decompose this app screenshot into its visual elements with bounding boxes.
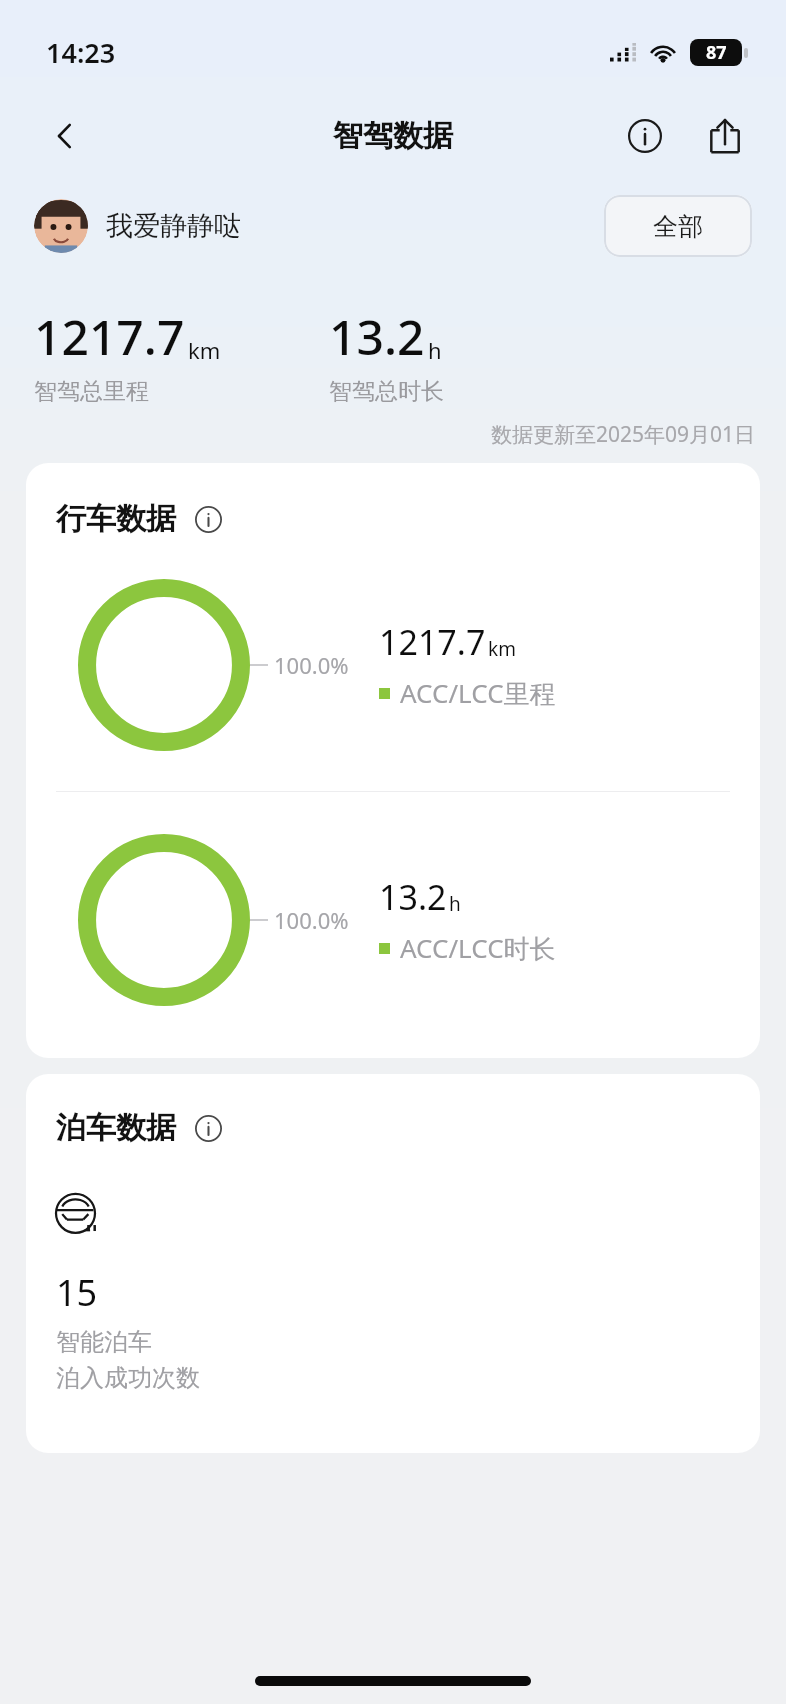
button[interactable]: 我爱静静哒 [34,199,249,253]
button[interactable]: Info [614,105,676,167]
staticText: 13.2 [379,874,447,920]
staticText: km [188,335,221,365]
staticText: 智驾数据 [333,117,453,155]
staticText: 行车数据 [56,500,176,538]
staticText: ACC/LCC里程 [400,675,556,711]
button[interactable]: More info about 泊车数据 [188,1108,228,1148]
staticText: 14:23 [46,34,116,71]
staticText: 87 [706,40,727,65]
staticText: 15 [56,1268,98,1317]
staticText: h [449,891,461,917]
staticText: 13.2 [329,304,425,369]
staticText: 泊车数据 [56,1109,176,1147]
staticText: 数据更新至2025年09月01日 [491,420,756,449]
staticText: km [488,636,516,662]
staticText: 泊入成功次数 [56,1363,200,1393]
staticText: 1217.7 [34,304,185,369]
staticText: 全部 [653,211,703,242]
staticText: 我爱静静哒 [106,209,241,243]
button[interactable]: 全部 [604,195,752,257]
button[interactable]: Back [34,105,96,167]
staticText: ACC/LCC时长 [400,930,556,966]
staticText: 100.0% [274,905,349,935]
staticText: 智能泊车 [56,1327,152,1357]
staticText: 智驾总时长 [329,377,444,406]
button[interactable]: More info about 行车数据 [188,499,228,539]
staticText: 100.0% [274,650,349,680]
staticText: h [428,335,442,365]
staticText: 1217.7 [379,619,486,665]
button[interactable]: Share [694,105,756,167]
staticText: 智驾总里程 [34,377,149,406]
